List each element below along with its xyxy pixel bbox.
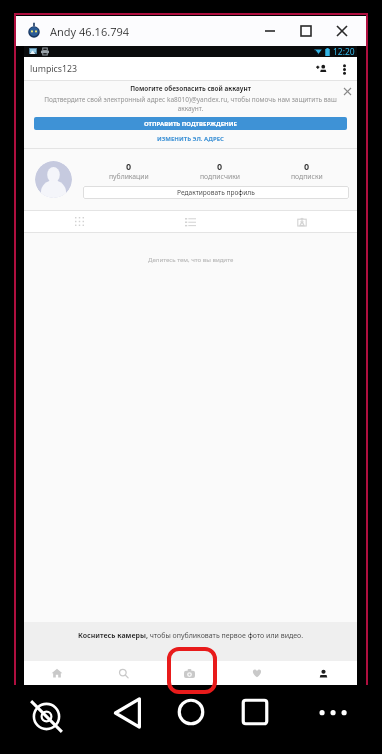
button[interactable]: Search — [90, 661, 156, 685]
staticText: Andy 46.16.794 — [50, 24, 130, 39]
button[interactable]: Minimize — [252, 16, 288, 46]
staticText: Коснитесь камеры, чтобы опубликовать пер… — [78, 631, 304, 641]
staticText: 0 — [126, 160, 132, 172]
button[interactable]: Hide camera — [23, 693, 70, 740]
button[interactable]: Редактировать профиль — [83, 186, 349, 199]
button[interactable]: Grid — [24, 211, 135, 232]
staticText: ОТПРАВИТЬ ПОДТВЕРЖДЕНИЕ — [144, 120, 237, 128]
staticText: 0 — [217, 160, 223, 172]
button[interactable]: Profile photo — [35, 161, 72, 198]
staticText: ИЗМЕНИТЬ ЭЛ. АДРЕС — [157, 135, 224, 143]
button[interactable]: Tagged — [246, 211, 357, 232]
button[interactable]: Discover people — [309, 57, 333, 80]
button[interactable]: Dismiss — [337, 81, 357, 101]
button[interactable]: Home — [24, 661, 90, 685]
staticText: подписчики — [200, 172, 240, 181]
button[interactable]: ОТПРАВИТЬ ПОДТВЕРЖДЕНИЕ — [34, 117, 347, 130]
button[interactable]: Activity — [223, 661, 290, 685]
staticText: 0 — [304, 160, 310, 172]
staticText: lumpics123 — [30, 63, 78, 75]
button[interactable]: Camera — [156, 661, 223, 685]
staticText: Редактировать профиль — [177, 188, 255, 197]
button[interactable]: Options — [333, 58, 355, 80]
button[interactable]: ИЗМЕНИТЬ ЭЛ. АДРЕС — [24, 130, 357, 148]
staticText: 12:20 — [333, 46, 355, 57]
button[interactable]: Recents — [235, 692, 275, 732]
button[interactable]: Close — [324, 16, 360, 46]
staticText: Делитесь тем, что вы видите — [148, 255, 234, 263]
staticText: подписки — [291, 172, 323, 181]
button[interactable]: Profile — [290, 661, 357, 685]
button[interactable]: More options — [312, 702, 353, 743]
button[interactable]: Maximize — [288, 16, 324, 46]
button[interactable]: Back — [107, 692, 149, 734]
staticText: Помогите обезопасить свой аккаунт — [24, 84, 357, 93]
staticText: публикации — [109, 172, 149, 181]
staticText: Подтвердите свой электронный адрес ka801… — [32, 95, 349, 113]
button[interactable]: List — [135, 211, 246, 232]
button[interactable]: Home — [171, 692, 211, 732]
